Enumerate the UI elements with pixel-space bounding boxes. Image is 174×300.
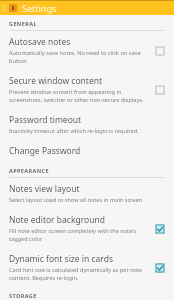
staticText: APPEARANCE	[9, 167, 50, 174]
staticText: Note editor background	[9, 214, 105, 226]
staticText: Inactivity timeout after which re-login …	[9, 127, 139, 135]
button[interactable]: Autosave notes	[0, 31, 174, 70]
staticText: Select layout used to show all notes in …	[9, 196, 143, 204]
button[interactable]: Unchecked	[154, 45, 165, 56]
staticText: Password timeout	[9, 114, 82, 126]
staticText: Fill note editor screen completely with …	[9, 227, 148, 243]
staticText: Dynamic font size in cards	[9, 253, 113, 265]
staticText: Settings	[22, 2, 57, 14]
button[interactable]: Navigate up	[0, 1, 9, 15]
staticText: Secure window content	[9, 75, 103, 87]
button[interactable]: Unchecked	[154, 84, 165, 95]
button[interactable]: Change Password	[0, 140, 174, 162]
button[interactable]: Secure window content	[0, 70, 174, 109]
button[interactable]: Note editor background	[0, 209, 174, 248]
staticText: Card font size is calculated dynamically…	[9, 266, 148, 282]
button[interactable]: Notes view layout	[0, 178, 174, 209]
staticText: Automatically save notes. No need to cli…	[9, 49, 148, 65]
staticText: GENERAL	[9, 20, 37, 27]
button[interactable]: Checked	[154, 262, 165, 273]
staticText: STORAGE	[9, 292, 37, 299]
staticText: Autosave notes	[9, 36, 71, 48]
staticText: Change Password	[9, 145, 81, 157]
button[interactable]: Dynamic font size in cards	[0, 248, 174, 287]
staticText: Notes view layout	[9, 183, 80, 195]
button[interactable]: Checked	[154, 223, 165, 234]
staticText: Prevent window content from appearing in…	[9, 88, 148, 104]
button[interactable]: Password timeout	[0, 109, 174, 140]
